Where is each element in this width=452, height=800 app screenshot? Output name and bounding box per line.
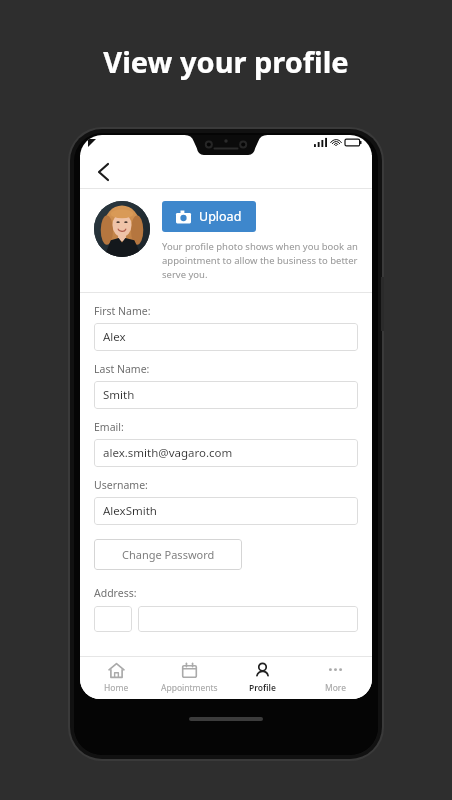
button[interactable]	[94, 606, 132, 632]
staticText: First Name:	[94, 304, 151, 318]
staticText: Email:	[94, 420, 124, 434]
staticText: Username:	[94, 478, 148, 492]
staticText: Change Password	[122, 547, 215, 562]
staticText: Smith	[103, 387, 135, 403]
staticText: Last Name:	[94, 362, 150, 376]
staticText: View your profile	[103, 42, 349, 81]
button[interactable]: alex.smith@vagaro.com	[94, 439, 358, 467]
button[interactable]: Smith	[94, 381, 358, 409]
button[interactable]: Profile	[226, 657, 299, 699]
staticText: Address:	[94, 586, 137, 600]
button[interactable]: Alex	[94, 323, 358, 351]
button[interactable]: Appointments	[153, 657, 226, 699]
button[interactable]: Home	[80, 657, 153, 699]
button[interactable]: More	[299, 657, 372, 699]
button[interactable]: AlexSmith	[94, 497, 358, 525]
staticText: alex.smith@vagaro.com	[103, 445, 233, 461]
staticText: Appointments	[161, 682, 218, 694]
button[interactable]	[138, 606, 358, 632]
staticText: Home	[104, 682, 129, 694]
button[interactable]: Back	[86, 155, 120, 189]
button[interactable]: Change Password	[94, 539, 242, 570]
staticText: Your profile photo shows when you book a…	[162, 240, 358, 281]
staticText: More	[325, 682, 346, 694]
staticText: Upload	[199, 208, 242, 225]
staticText: AlexSmith	[103, 503, 157, 519]
staticText: Profile	[249, 682, 276, 694]
staticText: Alex	[103, 329, 126, 345]
button[interactable]: Upload	[162, 201, 256, 232]
